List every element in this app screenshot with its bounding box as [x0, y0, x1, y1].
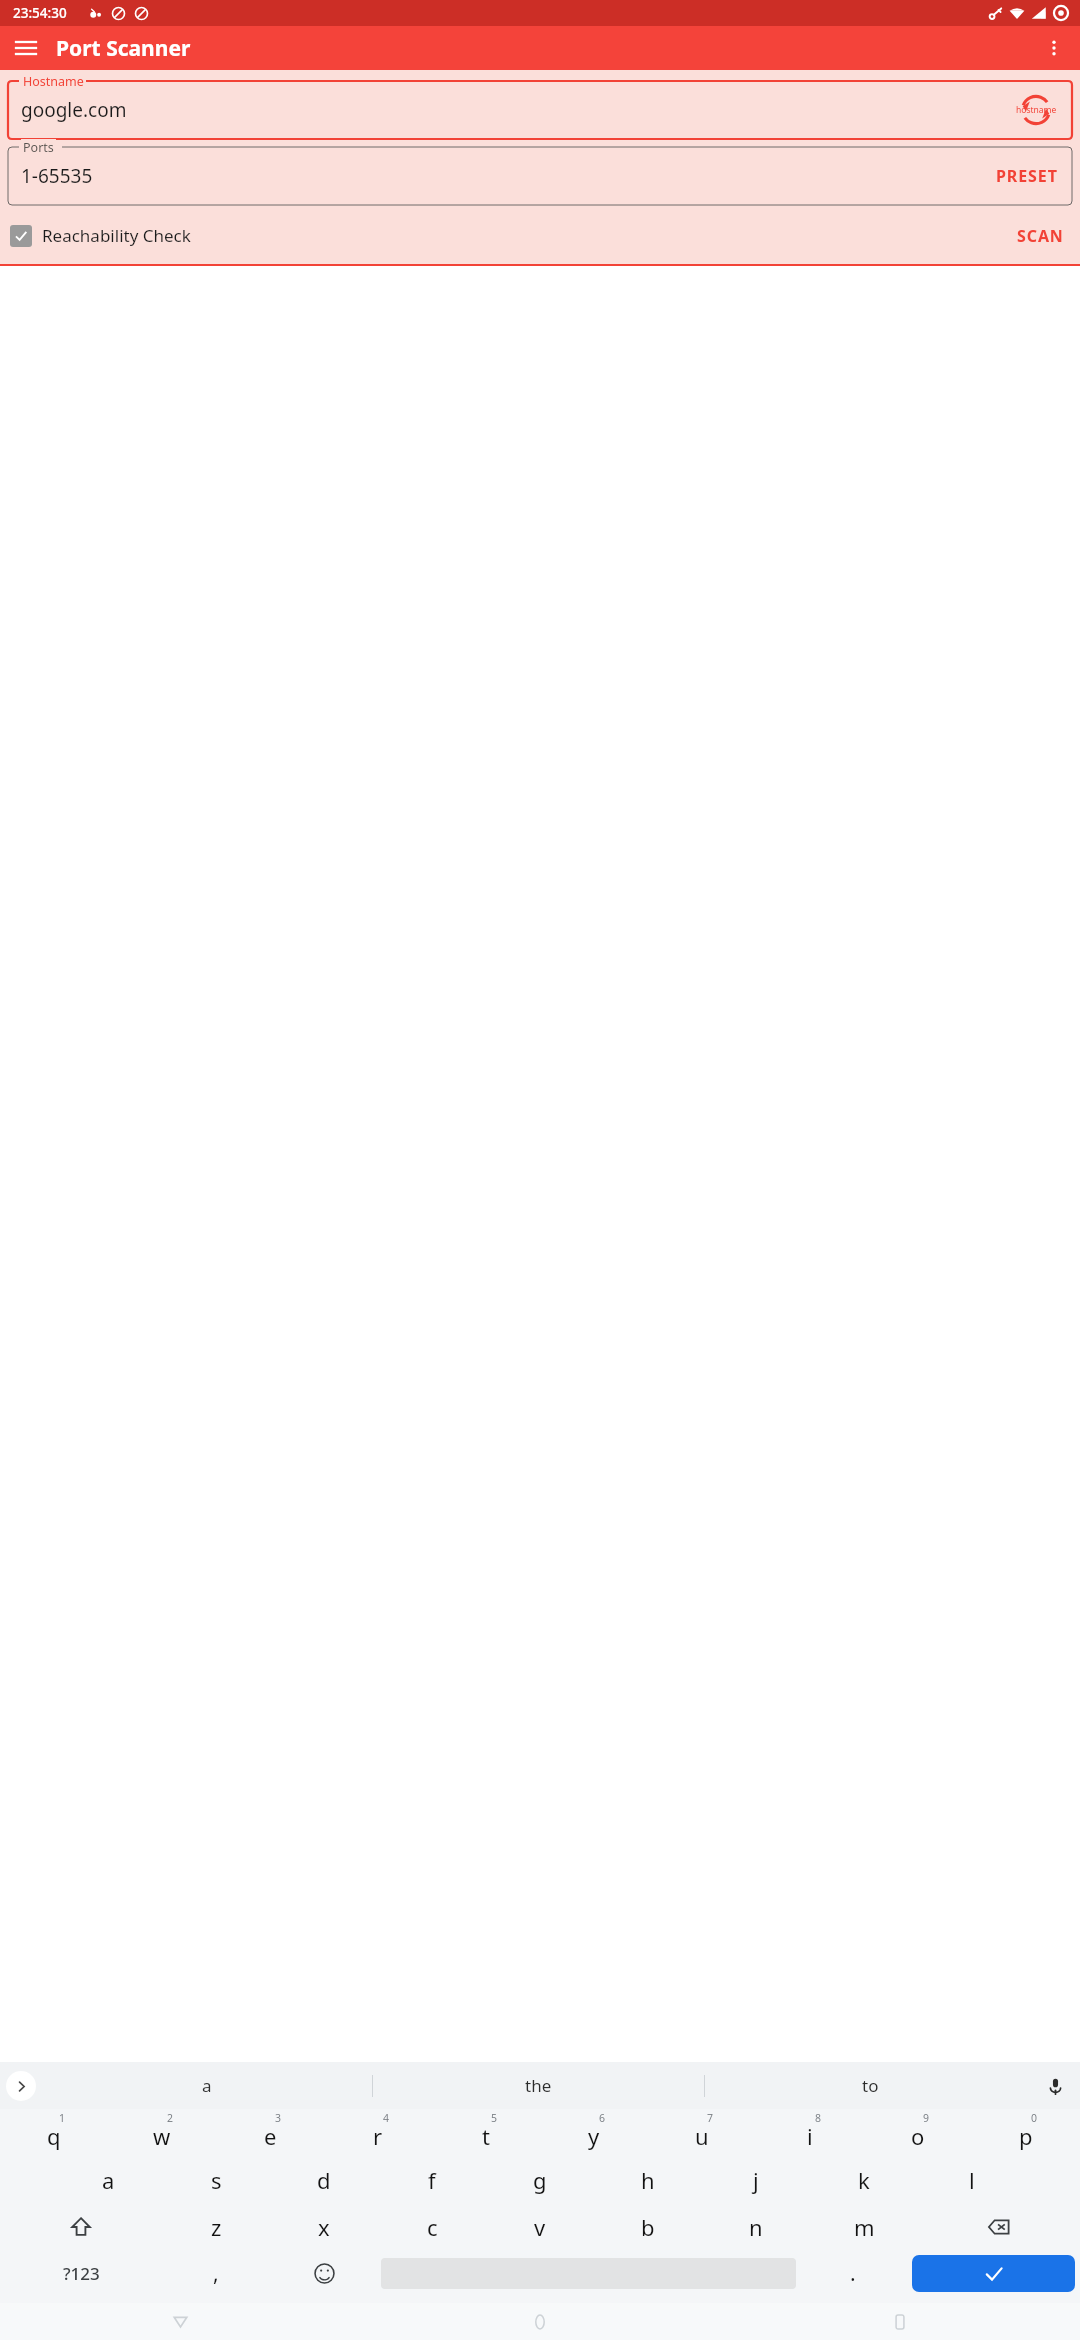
button[interactable]: k [810, 2156, 918, 2203]
staticText: n [749, 2212, 763, 2242]
staticText: x [318, 2212, 330, 2242]
button[interactable]: d [270, 2156, 378, 2203]
staticText: the [525, 2074, 552, 2097]
staticText: f [428, 2165, 436, 2195]
staticText: b [641, 2212, 655, 2242]
staticText: c [427, 2212, 438, 2242]
button[interactable]: . [799, 2250, 907, 2297]
button[interactable]: ?123 [0, 2250, 162, 2297]
button[interactable]: to [705, 2062, 1036, 2109]
staticText: , [213, 2259, 219, 2288]
button[interactable]: 9 [864, 2109, 972, 2156]
button[interactable]: n [702, 2203, 810, 2250]
staticText: 7 [707, 2111, 714, 2125]
button[interactable]: z [162, 2203, 270, 2250]
staticText: 6 [599, 2111, 606, 2125]
staticText: p [1019, 2121, 1033, 2151]
button[interactable]: c [378, 2203, 486, 2250]
staticText: u [695, 2121, 709, 2151]
staticText: l [969, 2165, 975, 2195]
staticText: 3 [275, 2111, 282, 2125]
button[interactable]: a [54, 2156, 162, 2203]
button[interactable]: 5 [432, 2109, 540, 2156]
staticText: 9 [923, 2111, 930, 2125]
button[interactable]: Ports [8, 147, 1072, 205]
staticText: m [854, 2212, 875, 2242]
staticText: 0 [1031, 2111, 1038, 2125]
staticText: . [850, 2259, 856, 2288]
staticText: 4 [383, 2111, 390, 2125]
button[interactable]: the [373, 2062, 704, 2109]
button[interactable]: Voice input [1038, 2069, 1072, 2103]
button[interactable]: Toggle hostname or IP [1008, 93, 1064, 127]
button[interactable]: More options [1032, 26, 1076, 70]
staticText: a [202, 2074, 212, 2097]
staticText: y [588, 2121, 600, 2151]
staticText: 23:54:30 [13, 4, 67, 22]
button[interactable]: 7 [648, 2109, 756, 2156]
staticText: h [641, 2165, 655, 2195]
staticText: 5 [491, 2111, 498, 2125]
staticText: 1 [59, 2111, 66, 2125]
button[interactable]: 8 [756, 2109, 864, 2156]
staticText: w [153, 2121, 171, 2151]
staticText: Hostname [23, 73, 84, 90]
button[interactable]: g [486, 2156, 594, 2203]
staticText: i [807, 2121, 813, 2151]
staticText: v [534, 2212, 546, 2242]
button[interactable]: h [594, 2156, 702, 2203]
button[interactable]: j [702, 2156, 810, 2203]
button[interactable]: Hostname [8, 81, 1072, 139]
staticText: SCAN [1017, 225, 1064, 245]
staticText: k [858, 2165, 870, 2195]
button[interactable]: b [594, 2203, 702, 2250]
button[interactable]: 0 [972, 2109, 1080, 2156]
staticText: to [862, 2074, 879, 2097]
staticText: Reachability Check [42, 224, 191, 247]
staticText: o [911, 2121, 925, 2151]
staticText: q [47, 2121, 61, 2151]
button[interactable]: v [486, 2203, 594, 2250]
button[interactable]: 6 [540, 2109, 648, 2156]
button[interactable]: Emoji [270, 2250, 378, 2297]
staticText: a [102, 2165, 115, 2195]
button[interactable]: Open navigation drawer [4, 26, 48, 70]
staticText: j [753, 2165, 759, 2195]
staticText: Port Scanner [56, 34, 191, 63]
button[interactable]: 1 [0, 2109, 108, 2156]
staticText: s [211, 2165, 222, 2195]
button[interactable]: 4 [324, 2109, 432, 2156]
staticText: r [373, 2121, 383, 2151]
staticText: z [211, 2212, 222, 2242]
staticText: 8 [815, 2111, 822, 2125]
staticText: google.com [21, 97, 127, 123]
button[interactable]: l [918, 2156, 1026, 2203]
button[interactable]: More suggestions [6, 2071, 36, 2101]
staticText: e [264, 2121, 277, 2151]
staticText: t [482, 2121, 490, 2151]
button[interactable]: f [378, 2156, 486, 2203]
button[interactable]: , [162, 2250, 270, 2297]
staticText: hostname [1016, 104, 1057, 116]
staticText: 2 [167, 2111, 174, 2125]
button[interactable]: s [162, 2156, 270, 2203]
staticText: PRESET [996, 165, 1058, 187]
button[interactable]: 3 [216, 2109, 324, 2156]
staticText: 1-65535 [21, 163, 93, 189]
staticText: Ports [23, 139, 54, 156]
button[interactable]: m [810, 2203, 918, 2250]
button[interactable]: a [42, 2062, 372, 2109]
staticText: ?123 [63, 2262, 100, 2285]
button[interactable]: 2 [108, 2109, 216, 2156]
button[interactable]: PRESET [990, 157, 1064, 195]
button[interactable]: Backspace [918, 2203, 1080, 2250]
button[interactable]: SCAN [1009, 217, 1072, 253]
button[interactable]: Reachability Check [8, 222, 193, 249]
button[interactable]: x [270, 2203, 378, 2250]
button[interactable]: Shift [0, 2203, 162, 2250]
button[interactable]: Done [912, 2255, 1075, 2292]
